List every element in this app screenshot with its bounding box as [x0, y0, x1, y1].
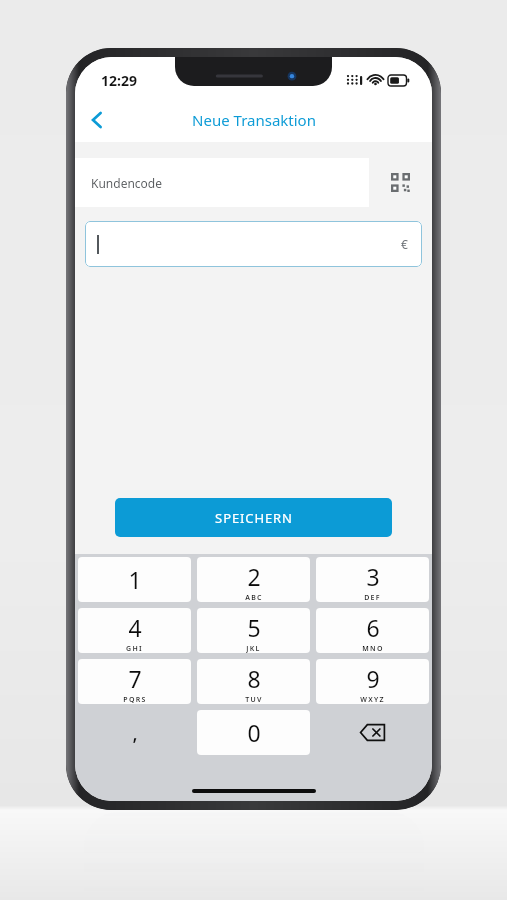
button[interactable]: 9 [316, 659, 429, 704]
button[interactable]: Löschen [316, 710, 429, 755]
staticText: JKL [246, 644, 261, 653]
button[interactable]: 6 [316, 608, 429, 653]
button[interactable]: 2 [197, 557, 310, 602]
button[interactable]: 5 [197, 608, 310, 653]
button[interactable]: QR-Code scannen [369, 158, 432, 207]
button[interactable]: 8 [197, 659, 310, 704]
staticText: 1 [128, 564, 142, 595]
staticText: 5 [247, 612, 261, 643]
staticText: 9 [366, 663, 380, 694]
staticText: ABC [245, 593, 263, 602]
staticText: , [132, 720, 138, 746]
button[interactable]: , [78, 710, 191, 755]
button[interactable]: 4 [78, 608, 191, 653]
staticText: GHI [126, 644, 143, 653]
staticText: Neue Transaktion [192, 110, 316, 130]
staticText: MNO [362, 644, 384, 653]
button[interactable]: € [85, 221, 422, 267]
staticText: TUV [245, 695, 263, 704]
staticText: 12:29 [101, 71, 137, 90]
button[interactable]: 1 [78, 557, 191, 602]
button[interactable]: 7 [78, 659, 191, 704]
button[interactable]: 3 [316, 557, 429, 602]
button[interactable]: SPEICHERN [115, 498, 392, 537]
staticText: SPEICHERN [215, 509, 293, 527]
button[interactable]: 0 [197, 710, 310, 755]
button[interactable]: Zurück [75, 98, 119, 142]
staticText: 8 [247, 663, 261, 694]
staticText: 2 [247, 561, 261, 592]
staticText: 7 [128, 663, 142, 694]
staticText: Kundencode [91, 175, 162, 191]
staticText: PQRS [123, 695, 147, 704]
staticText: 3 [366, 561, 380, 592]
staticText: 4 [128, 612, 142, 643]
staticText: € [401, 236, 408, 252]
staticText: DEF [364, 593, 381, 602]
staticText: 0 [247, 717, 261, 748]
staticText: 6 [366, 612, 380, 643]
staticText: WXYZ [360, 695, 385, 704]
button[interactable]: Kundencode [75, 158, 369, 207]
